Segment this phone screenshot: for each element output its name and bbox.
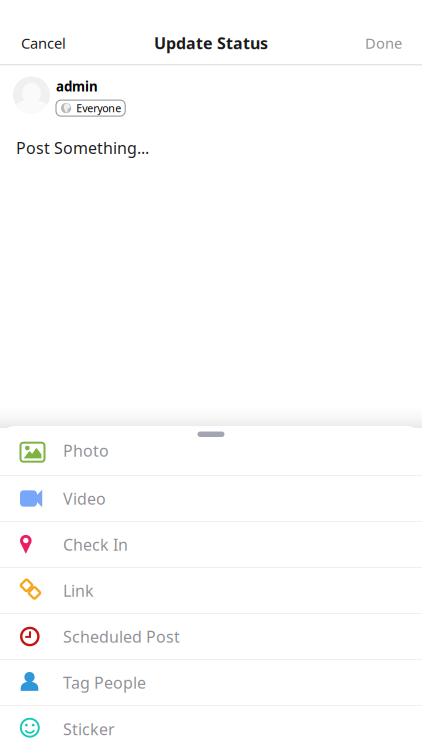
button[interactable]: Check In [0, 522, 422, 568]
staticText: Post Something... [16, 137, 149, 158]
button[interactable]: Everyone [56, 100, 125, 116]
button[interactable]: Link [0, 568, 422, 614]
staticText: Tag People [63, 672, 146, 693]
button[interactable]: Scheduled Post [0, 614, 422, 660]
staticText: Check In [63, 534, 128, 555]
button[interactable]: Photo [0, 426, 422, 476]
staticText: Cancel [21, 33, 66, 53]
button[interactable]: Tag People [0, 660, 422, 706]
button[interactable]: Done [345, 21, 422, 65]
button[interactable]: Sticker [0, 706, 422, 750]
button[interactable]: Cancel [0, 21, 87, 65]
staticText: Done [365, 33, 402, 53]
staticText: Sticker [63, 718, 115, 740]
staticText: Everyone [76, 101, 121, 115]
staticText: Scheduled Post [63, 626, 180, 647]
staticText: Video [63, 488, 106, 509]
staticText: Update Status [154, 32, 268, 54]
staticText: Photo [63, 440, 109, 461]
button[interactable]: Video [0, 476, 422, 522]
staticText: admin [56, 77, 98, 95]
staticText: Link [63, 580, 94, 601]
